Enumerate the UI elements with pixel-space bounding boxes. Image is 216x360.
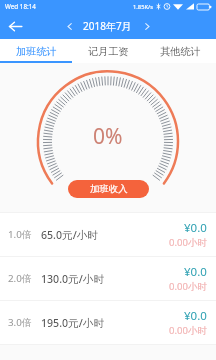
- staticText: Wed 18:14: [5, 2, 36, 11]
- button[interactable]: 3.0倍: [0, 301, 216, 344]
- staticText: 0.00小时: [169, 324, 207, 337]
- staticText: 加班收入: [90, 183, 128, 195]
- button[interactable]: 下一个月: [140, 16, 154, 36]
- staticText: ¥0.0: [184, 308, 207, 324]
- staticText: 2.0倍: [8, 272, 32, 285]
- staticText: ¥0.0: [184, 264, 207, 280]
- staticText: 195.0元/小时: [41, 316, 104, 330]
- button[interactable]: 2.0倍: [0, 257, 216, 300]
- button[interactable]: 返回: [0, 13, 31, 39]
- button[interactable]: 加班收入: [68, 180, 149, 198]
- staticText: 0%: [93, 122, 123, 151]
- button[interactable]: 其他统计: [144, 39, 216, 63]
- button[interactable]: 上一个月: [62, 16, 76, 36]
- button[interactable]: 记月工资: [72, 39, 144, 63]
- staticText: 3.0倍: [8, 316, 32, 329]
- staticText: 2018年7月: [83, 19, 132, 33]
- staticText: 0.00小时: [169, 280, 207, 293]
- staticText: 其他统计: [160, 45, 201, 58]
- staticText: 加班统计: [16, 45, 57, 58]
- staticText: ¥0.0: [184, 220, 207, 236]
- staticText: 1.0倍: [8, 228, 32, 241]
- staticText: 记月工资: [88, 45, 129, 58]
- staticText: 0.00小时: [169, 236, 207, 249]
- staticText: 130.0元/小时: [41, 272, 104, 286]
- button[interactable]: 加班统计: [0, 39, 72, 63]
- staticText: 65.0元/小时: [41, 228, 98, 242]
- staticText: 1.85K/s: [133, 3, 154, 11]
- button[interactable]: 1.0倍: [0, 213, 216, 256]
